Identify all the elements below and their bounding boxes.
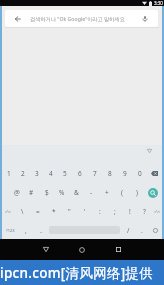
staticText: 7 [93, 169, 97, 178]
staticText: 3 [35, 169, 39, 178]
button[interactable]: 4 [44, 164, 58, 183]
staticText: ' [84, 207, 86, 216]
button[interactable]: ? [137, 202, 152, 221]
staticText: \ [21, 207, 24, 216]
staticText: 9 [123, 169, 127, 178]
button[interactable]: 0 [132, 164, 147, 183]
button[interactable]: ' [77, 202, 92, 221]
staticText: & [74, 188, 79, 197]
button[interactable]: 2 [16, 164, 30, 183]
staticText: * [52, 207, 56, 216]
button[interactable]: ! [122, 202, 137, 221]
staticText: / [127, 226, 130, 235]
button[interactable]: ; [107, 202, 122, 221]
button[interactable]: 9 [117, 164, 132, 183]
staticText: $ [45, 188, 49, 197]
button[interactable]: & [69, 183, 84, 202]
button[interactable]: ( [114, 183, 129, 202]
button[interactable]: 7 [87, 164, 102, 183]
button[interactable]: : [92, 202, 107, 221]
staticText: 0 [138, 169, 142, 178]
staticText: % [59, 188, 65, 197]
button[interactable]: , [18, 221, 34, 239]
button[interactable]: " [62, 202, 77, 221]
button[interactable]: + [99, 183, 114, 202]
button[interactable]: $ [39, 183, 54, 202]
staticText: + [105, 188, 109, 197]
staticText: ? [143, 207, 146, 216]
button[interactable]: _ [34, 221, 48, 239]
staticText: . [141, 226, 143, 235]
staticText: 3:30 [154, 0, 163, 6]
button[interactable] [149, 221, 162, 239]
staticText: = [36, 207, 40, 216]
button[interactable]: . [135, 221, 149, 239]
button[interactable]: * [46, 202, 62, 221]
button[interactable]: % [54, 183, 69, 202]
staticText: ; [114, 207, 116, 216]
button[interactable] [144, 183, 162, 202]
button[interactable] [147, 164, 162, 183]
staticText: 4 [49, 169, 53, 178]
button[interactable]: 5 [58, 164, 72, 183]
button[interactable]: =\< [2, 202, 14, 221]
button[interactable] [43, 247, 49, 252]
staticText: 검색하거나 "Ok Google"이라고 말하세요 [30, 15, 125, 22]
staticText: =\< [5, 209, 12, 214]
staticText: 1 [7, 169, 11, 178]
button[interactable] [116, 247, 121, 252]
staticText: 5 [63, 169, 67, 178]
button[interactable]: \ [14, 202, 30, 221]
staticText: ! [129, 207, 131, 216]
staticText: =\< [154, 209, 161, 214]
button[interactable]: ?123 [2, 221, 18, 239]
button[interactable]: @ [9, 183, 24, 202]
staticText: ) [136, 188, 138, 197]
staticText: " [68, 207, 71, 216]
staticText: , [25, 226, 27, 235]
staticText: 2 [21, 169, 25, 178]
staticText: ?123 [6, 228, 15, 233]
button[interactable]: 3 [30, 164, 44, 183]
staticText: - [90, 188, 93, 197]
button[interactable]: / [121, 221, 135, 239]
staticText: 8 [108, 169, 112, 178]
button[interactable] [79, 247, 85, 253]
staticText: : [99, 207, 101, 216]
button[interactable]: =\< [152, 202, 162, 221]
staticText: ipcn.com[清风网络]提供 [0, 264, 154, 282]
button[interactable]: = [30, 202, 46, 221]
staticText: _ [40, 227, 43, 234]
button[interactable]: 6 [72, 164, 87, 183]
button[interactable]: - [84, 183, 99, 202]
staticText: ( [121, 188, 123, 197]
button[interactable]: # [24, 183, 39, 202]
button[interactable]: ) [129, 183, 144, 202]
button[interactable]: 검색하거나 "Ok Google"이라고 말하세요 [5, 10, 158, 27]
staticText: 6 [78, 169, 82, 178]
button[interactable]: 8 [102, 164, 117, 183]
staticText: @ [14, 188, 20, 197]
staticText: # [29, 188, 34, 197]
button[interactable]: 1 [2, 164, 16, 183]
